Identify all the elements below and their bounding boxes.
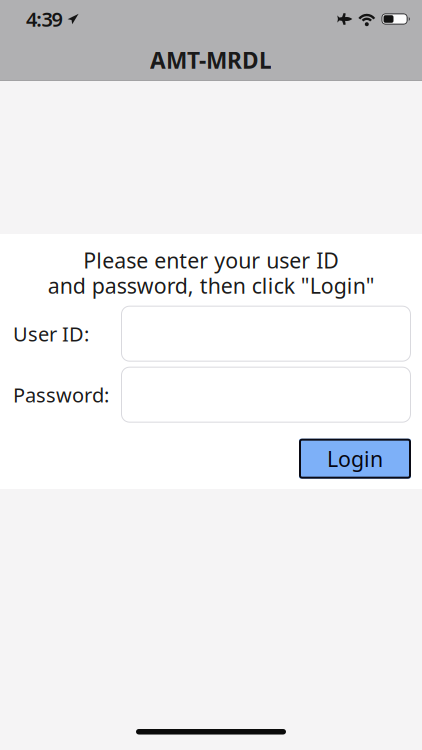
staticText: Please enter your user ID and password, … — [47, 246, 374, 300]
staticText: Password: — [13, 381, 109, 408]
staticText: Login — [327, 444, 383, 473]
staticText: AMT-MRDL — [150, 45, 272, 75]
button[interactable]: Password — [121, 367, 411, 423]
button[interactable]: User ID — [121, 306, 411, 362]
button[interactable]: Login — [299, 439, 411, 479]
staticText: User ID: — [13, 320, 89, 347]
staticText: 4:39 — [26, 6, 63, 32]
